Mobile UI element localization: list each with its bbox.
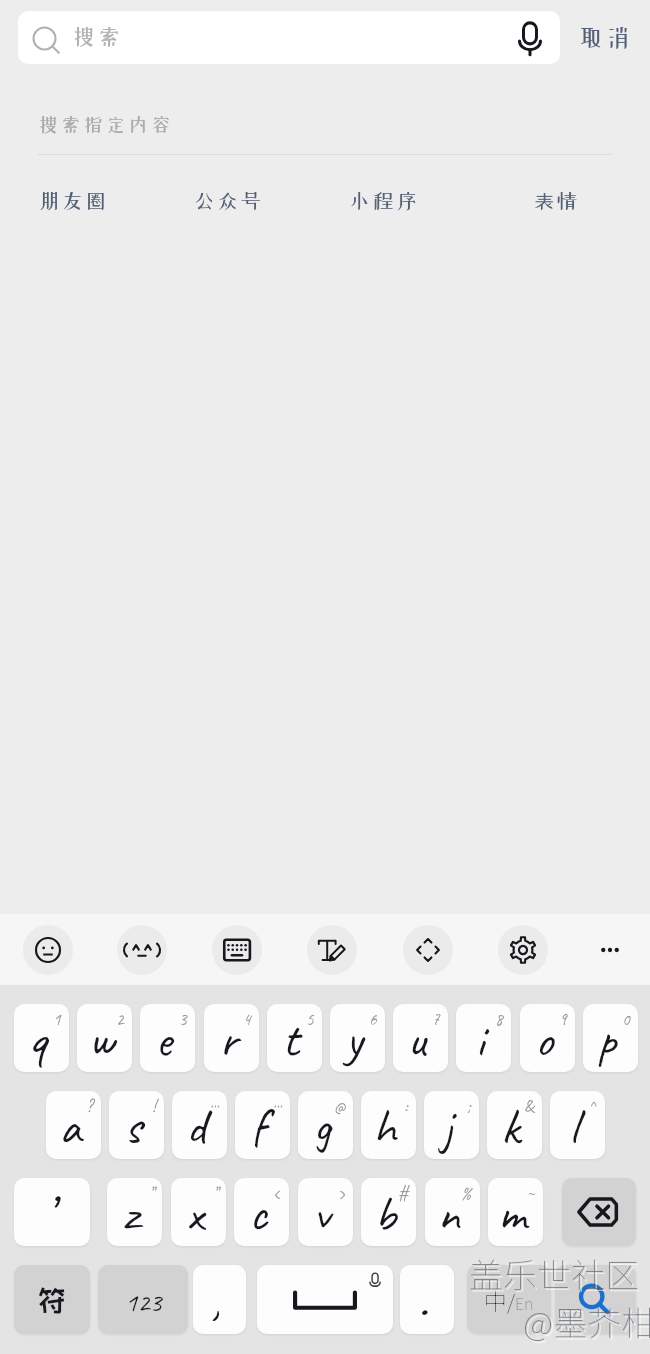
staticText: g: [313, 1095, 331, 1158]
button[interactable]: 1: [14, 1004, 69, 1072]
staticText: 盖乐世社区: [469, 1249, 639, 1298]
button[interactable]: More: [585, 925, 635, 975]
button[interactable]: 9: [520, 1004, 575, 1072]
staticText: ···: [209, 1096, 219, 1117]
button[interactable]: ‹: [234, 1178, 289, 1246]
staticText: 9: [559, 1009, 567, 1030]
staticText: /: [507, 1287, 515, 1316]
staticText: s: [124, 1095, 142, 1158]
staticText: ›: [337, 1183, 345, 1204]
button[interactable]: Handwriting: [307, 925, 357, 975]
staticText: 5: [306, 1009, 314, 1030]
button[interactable]: 123: [98, 1265, 188, 1334]
button[interactable]: :: [361, 1091, 416, 1159]
button[interactable]: 7: [393, 1004, 448, 1072]
staticText: p: [597, 1008, 616, 1071]
button[interactable]: ;: [424, 1091, 479, 1159]
staticText: w: [88, 1008, 114, 1071]
staticText: ”: [149, 1183, 154, 1204]
staticText: @墨芥柑: [525, 1299, 650, 1348]
staticText: v: [313, 1182, 330, 1245]
staticText: o: [535, 1008, 553, 1071]
button[interactable]: 搜索: [18, 11, 560, 64]
button[interactable]: Keyboard layout: [212, 925, 262, 975]
staticText: %: [461, 1183, 472, 1204]
staticText: &: [524, 1096, 534, 1117]
button[interactable]: ’: [14, 1178, 90, 1246]
staticText: d: [186, 1095, 206, 1158]
button[interactable]: ···: [172, 1091, 227, 1159]
staticText: En: [515, 1291, 534, 1314]
button[interactable]: &: [487, 1091, 542, 1159]
button[interactable]: 2: [77, 1004, 132, 1072]
button[interactable]: 取消: [570, 11, 642, 64]
button[interactable]: Voice search: [508, 16, 552, 60]
staticText: c: [249, 1182, 267, 1245]
button[interactable]: #: [361, 1178, 416, 1246]
button[interactable]: 3: [140, 1004, 195, 1072]
staticText: @墨芥柑: [523, 1297, 650, 1346]
button[interactable]: ^: [550, 1091, 605, 1159]
button[interactable]: 朋友圈: [38, 181, 109, 221]
staticText: n: [437, 1182, 460, 1245]
staticText: 6: [369, 1009, 377, 1030]
staticText: y: [345, 1008, 363, 1071]
button[interactable]: .: [400, 1265, 454, 1334]
button[interactable]: 8: [456, 1004, 511, 1072]
staticText: ;: [467, 1096, 471, 1117]
staticText: 3: [179, 1009, 187, 1030]
staticText: 7: [432, 1009, 440, 1030]
staticText: b: [374, 1182, 396, 1245]
button[interactable]: Resize keyboard: [403, 925, 453, 975]
staticText: 搜索指定内容: [38, 114, 173, 134]
staticText: f: [251, 1095, 266, 1158]
staticText: ,: [211, 1269, 221, 1332]
button[interactable]: ,: [193, 1265, 246, 1334]
button[interactable]: !: [109, 1091, 164, 1159]
button[interactable]: Space: [257, 1265, 393, 1334]
staticText: e: [155, 1008, 172, 1071]
button[interactable]: ?: [46, 1091, 101, 1159]
button[interactable]: 小程序: [349, 181, 420, 221]
staticText: @: [334, 1096, 345, 1117]
staticText: a: [59, 1095, 81, 1158]
button[interactable]: Kaomoji: [117, 925, 167, 975]
staticText: ···: [272, 1096, 282, 1117]
button[interactable]: 0: [583, 1004, 638, 1072]
button[interactable]: Emoji: [23, 925, 73, 975]
staticText: 4: [243, 1009, 251, 1030]
staticText: ~: [527, 1183, 535, 1204]
staticText: 1: [53, 1009, 61, 1030]
button[interactable]: @: [298, 1091, 353, 1159]
button[interactable]: ”: [171, 1178, 226, 1246]
staticText: t: [282, 1008, 299, 1071]
staticText: j: [442, 1095, 453, 1158]
button[interactable]: 符: [14, 1265, 90, 1334]
staticText: q: [28, 1008, 47, 1071]
staticText: .: [418, 1269, 428, 1332]
button[interactable]: Backspace: [562, 1178, 636, 1246]
button[interactable]: ”: [107, 1178, 162, 1246]
staticText: 朋友圈: [38, 191, 109, 212]
staticText: k: [501, 1095, 520, 1158]
button[interactable]: 4: [204, 1004, 259, 1072]
staticText: 123: [125, 1285, 162, 1319]
staticText: ^: [589, 1096, 597, 1117]
button[interactable]: %: [425, 1178, 480, 1246]
staticText: !: [152, 1096, 156, 1117]
button[interactable]: 表情: [533, 181, 581, 221]
button[interactable]: ›: [298, 1178, 353, 1246]
staticText: z: [123, 1182, 139, 1245]
button[interactable]: 6: [330, 1004, 385, 1072]
staticText: l: [569, 1095, 578, 1158]
button[interactable]: Settings: [498, 925, 548, 975]
button[interactable]: Switch language: [467, 1265, 551, 1334]
button[interactable]: ···: [235, 1091, 290, 1159]
staticText: x: [186, 1182, 204, 1245]
button[interactable]: 5: [267, 1004, 322, 1072]
staticText: 取消: [578, 25, 634, 50]
button[interactable]: ~: [488, 1178, 543, 1246]
staticText: 公众号: [193, 191, 264, 212]
button[interactable]: Search: [555, 1265, 636, 1334]
button[interactable]: 公众号: [193, 181, 264, 221]
